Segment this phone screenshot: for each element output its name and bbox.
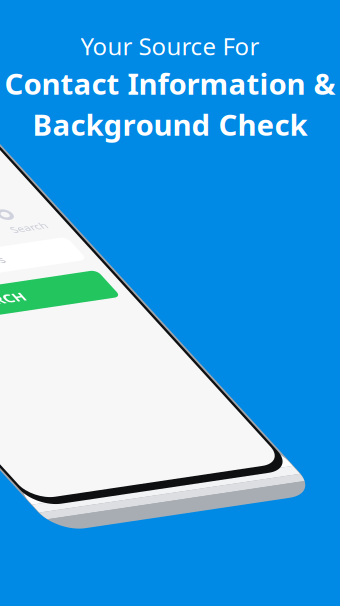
- button[interactable]: Name, phone or address: [20, 280, 340, 326]
- staticText: SEARCH: [140, 360, 223, 388]
- staticText: Contact Information &: [4, 64, 335, 103]
- button[interactable]: SEARCH: [20, 347, 340, 401]
- staticText: Your Source For: [80, 30, 259, 62]
- staticText: Background Check: [32, 105, 307, 144]
- staticText: Name, phone or address: [36, 292, 240, 315]
